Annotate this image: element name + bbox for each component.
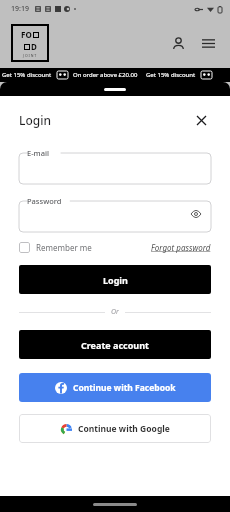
button[interactable]: Continue with Google	[19, 414, 211, 443]
button[interactable]: Continue with Facebook	[19, 373, 211, 402]
staticText: Get 15% discount	[2, 71, 52, 79]
staticText: J O I N T	[23, 53, 37, 58]
button[interactable]: Menu	[196, 31, 220, 55]
button[interactable]: Food Joint home	[11, 24, 49, 62]
staticText: Create account	[81, 339, 149, 351]
staticText: 19:19	[11, 4, 29, 14]
staticText: Password	[27, 196, 62, 206]
staticText: Forgot password	[151, 242, 211, 253]
staticText: Continue with Facebook	[73, 382, 176, 394]
button[interactable]: Forgot password	[151, 242, 211, 253]
staticText: Remember me	[36, 242, 92, 253]
staticText: D	[31, 41, 37, 52]
button[interactable]: Remember me	[19, 242, 92, 253]
button[interactable]: Show password	[188, 206, 204, 222]
staticText: On order above £20.00	[73, 71, 138, 79]
staticText: Or	[111, 307, 119, 317]
button[interactable]: Close	[191, 110, 211, 130]
staticText: Login	[19, 112, 51, 128]
staticText: Login	[103, 274, 128, 286]
staticText: Get 15% discount	[146, 71, 196, 79]
staticText: Continue with Google	[78, 423, 170, 435]
button[interactable]: Create account	[19, 330, 211, 359]
staticText: FO	[21, 29, 32, 40]
button[interactable]: Account	[166, 31, 190, 55]
button[interactable]: Login	[19, 265, 211, 294]
staticText: E-mail	[27, 148, 50, 158]
